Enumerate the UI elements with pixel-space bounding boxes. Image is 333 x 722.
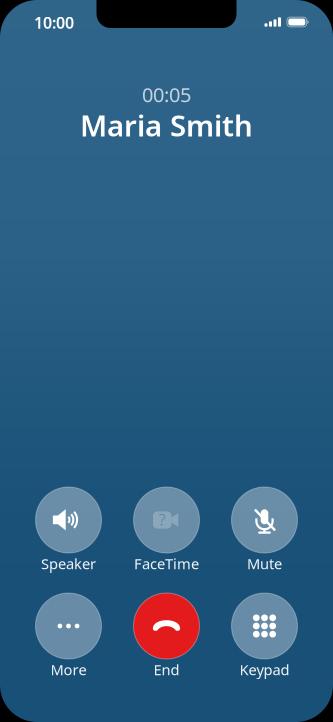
staticText: 00:05 [142,81,191,108]
staticText: Mute [247,554,282,573]
button[interactable]: Mute [219,487,309,575]
staticText: Maria Smith [80,105,253,144]
button[interactable]: Keypad [219,593,309,681]
staticText: Keypad [239,660,289,679]
button[interactable]: ? [121,487,211,575]
staticText: 10:00 [34,12,74,33]
staticText: FaceTime [134,554,199,573]
button[interactable]: More [23,593,113,681]
button[interactable]: End [121,593,211,681]
staticText: More [50,660,86,679]
staticText: Speaker [41,554,96,573]
button[interactable]: Speaker [23,487,113,575]
staticText: End [153,660,179,679]
staticText: ? [159,509,166,530]
